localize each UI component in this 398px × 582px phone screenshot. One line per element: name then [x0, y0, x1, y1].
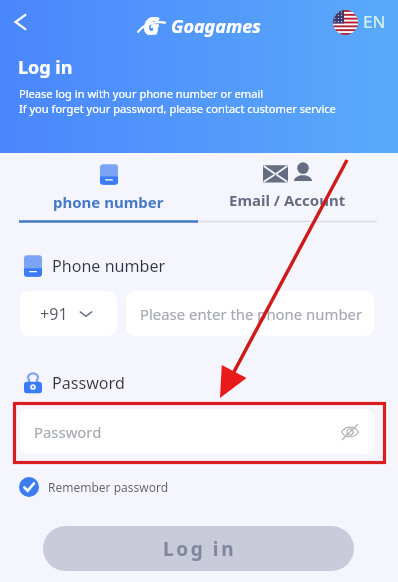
button[interactable]: +91 [20, 291, 117, 336]
staticText: Phone number [52, 255, 166, 277]
staticText: phone number [53, 192, 164, 212]
staticText: Goagames [171, 14, 261, 39]
button[interactable]: Password [20, 409, 374, 454]
staticText: Password [34, 422, 102, 442]
button[interactable]: Please enter the phone number [126, 291, 374, 336]
staticText: Please enter the phone number [140, 304, 363, 324]
button[interactable]: Log in [43, 526, 354, 571]
staticText: +91 [40, 303, 68, 325]
staticText: Log in [18, 55, 73, 80]
staticText: Remember password [48, 479, 169, 495]
button[interactable]: Email / Account [198, 153, 377, 210]
button[interactable]: Remember password [19, 477, 169, 497]
button[interactable]: phone number [19, 153, 198, 212]
button[interactable]: Language English [333, 10, 386, 35]
button[interactable]: Back [2, 4, 38, 40]
staticText: Email / Account [229, 190, 346, 210]
staticText: Please log in with your phone number or … [19, 86, 264, 101]
staticText: G [143, 9, 160, 37]
staticText: If you forget your password, please cont… [19, 101, 336, 116]
staticText: Log in [163, 536, 237, 562]
staticText: Password [52, 372, 125, 394]
staticText: EN [363, 10, 386, 33]
button[interactable]: Show password [337, 419, 363, 445]
